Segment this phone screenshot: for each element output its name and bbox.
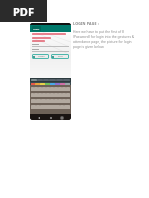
button[interactable]: Key	[38, 87, 42, 91]
button[interactable]: Key	[46, 99, 50, 103]
button[interactable]	[56, 79, 63, 81]
button[interactable]: Key	[62, 87, 66, 91]
button[interactable]: Key	[38, 93, 42, 97]
button[interactable]: Key	[31, 105, 36, 109]
button[interactable]: Key	[66, 93, 70, 97]
button[interactable]: LOGIN	[32, 54, 49, 59]
staticText: Here we have to put the first of 8 (Pass…	[73, 29, 135, 49]
button[interactable]	[32, 49, 69, 52]
button[interactable]: Key	[31, 93, 34, 97]
button[interactable]: Key	[54, 87, 58, 91]
button[interactable]: Recent apps	[59, 115, 65, 120]
button[interactable]	[43, 79, 49, 81]
button[interactable]: Key	[54, 99, 58, 103]
button[interactable]: Back	[36, 115, 42, 120]
button[interactable]: Key	[36, 99, 41, 103]
button[interactable]: Key	[34, 93, 38, 97]
button[interactable]	[35, 83, 40, 85]
button[interactable]: PDF document	[0, 0, 47, 22]
button[interactable]: Key	[42, 87, 46, 91]
button[interactable]: Key	[66, 87, 70, 91]
button[interactable]: Key	[60, 105, 64, 109]
button[interactable]	[31, 83, 35, 85]
staticText: LOGIN	[38, 55, 45, 58]
button[interactable]: Key	[62, 93, 66, 97]
button[interactable]: Key	[34, 87, 38, 91]
button[interactable]: Key	[58, 93, 62, 97]
button[interactable]: Key	[36, 105, 40, 109]
button[interactable]	[31, 79, 37, 81]
staticText: EXIT	[58, 55, 63, 58]
staticText: LOGIN PAGE :	[73, 21, 100, 26]
button[interactable]	[37, 79, 43, 81]
button[interactable]: Key	[50, 93, 54, 97]
button[interactable]: EXIT	[51, 54, 69, 59]
button[interactable]: Login	[33, 27, 40, 30]
staticText: PDF	[13, 4, 34, 19]
button[interactable]: Key	[31, 87, 34, 91]
button[interactable]: Key	[66, 99, 70, 103]
button[interactable]	[32, 44, 69, 47]
button[interactable]: Key	[31, 99, 36, 103]
button[interactable]: Key	[42, 93, 46, 97]
button[interactable]: Key	[58, 99, 62, 103]
button[interactable]: Home	[48, 115, 54, 120]
button[interactable]	[63, 79, 70, 81]
staticText: Login	[33, 27, 40, 30]
button[interactable]: Key	[46, 93, 50, 97]
button[interactable]	[40, 83, 45, 85]
button[interactable]: Key	[62, 99, 66, 103]
button[interactable]: Key	[50, 99, 54, 103]
button[interactable]	[49, 79, 56, 81]
button[interactable]: Key	[54, 93, 58, 97]
button[interactable]: Key	[41, 99, 46, 103]
button[interactable]: Key	[50, 87, 54, 91]
button[interactable]: Key	[46, 87, 50, 91]
button[interactable]: Key	[58, 87, 62, 91]
